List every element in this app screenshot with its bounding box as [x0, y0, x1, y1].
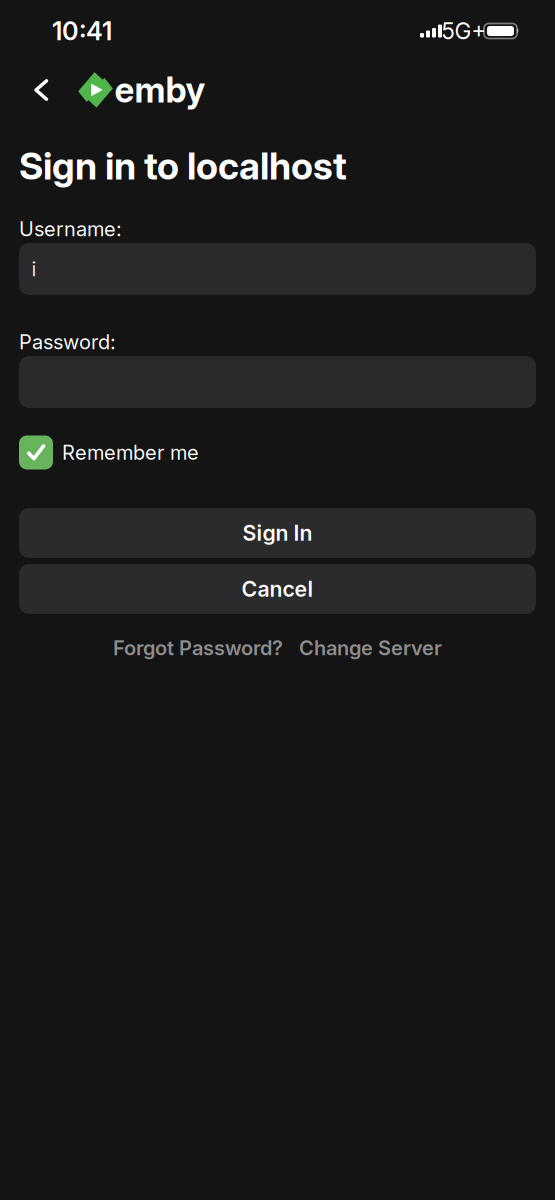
staticText: Cancel: [241, 576, 313, 602]
staticText: Forgot Password?: [113, 636, 283, 660]
staticText: Sign in to localhost: [19, 144, 347, 188]
staticText: i: [31, 257, 36, 281]
button[interactable]: Change Server: [299, 636, 442, 660]
staticText: Change Server: [299, 636, 442, 660]
staticText: emby: [114, 70, 205, 110]
staticText: 10:41: [52, 16, 112, 46]
button[interactable]: Back: [26, 73, 56, 107]
staticText: Remember me: [62, 441, 199, 464]
staticText: 5G+: [441, 18, 486, 44]
staticText: Username:: [19, 217, 122, 241]
staticText: Password:: [19, 330, 116, 354]
button[interactable]: Username: [19, 243, 536, 295]
button[interactable]: Forgot Password?: [113, 636, 283, 660]
button[interactable]: Cancel: [19, 564, 536, 614]
button[interactable]: Sign In: [19, 508, 536, 558]
staticText: Sign In: [242, 520, 312, 546]
button[interactable]: Remember me: [19, 435, 199, 469]
